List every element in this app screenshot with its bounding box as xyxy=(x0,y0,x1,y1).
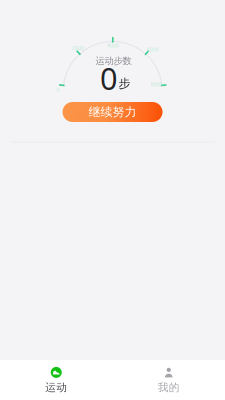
button[interactable]: 继续努力 xyxy=(62,102,162,122)
staticText: 0 xyxy=(100,58,118,98)
staticText: 6000 xyxy=(146,46,158,53)
staticText: 4000 xyxy=(107,42,119,49)
staticText: 8000 xyxy=(150,81,162,88)
staticText: 2000 xyxy=(72,44,84,52)
staticText: 步 xyxy=(118,76,130,91)
staticText: 运动 xyxy=(45,381,67,394)
button[interactable]: 我的 xyxy=(112,367,225,394)
staticText: 运动步数 xyxy=(95,55,131,67)
button[interactable]: 运动 xyxy=(0,367,112,394)
staticText: 我的 xyxy=(158,381,180,394)
staticText: 继续努力 xyxy=(88,105,136,119)
staticText: 0 xyxy=(56,86,59,94)
